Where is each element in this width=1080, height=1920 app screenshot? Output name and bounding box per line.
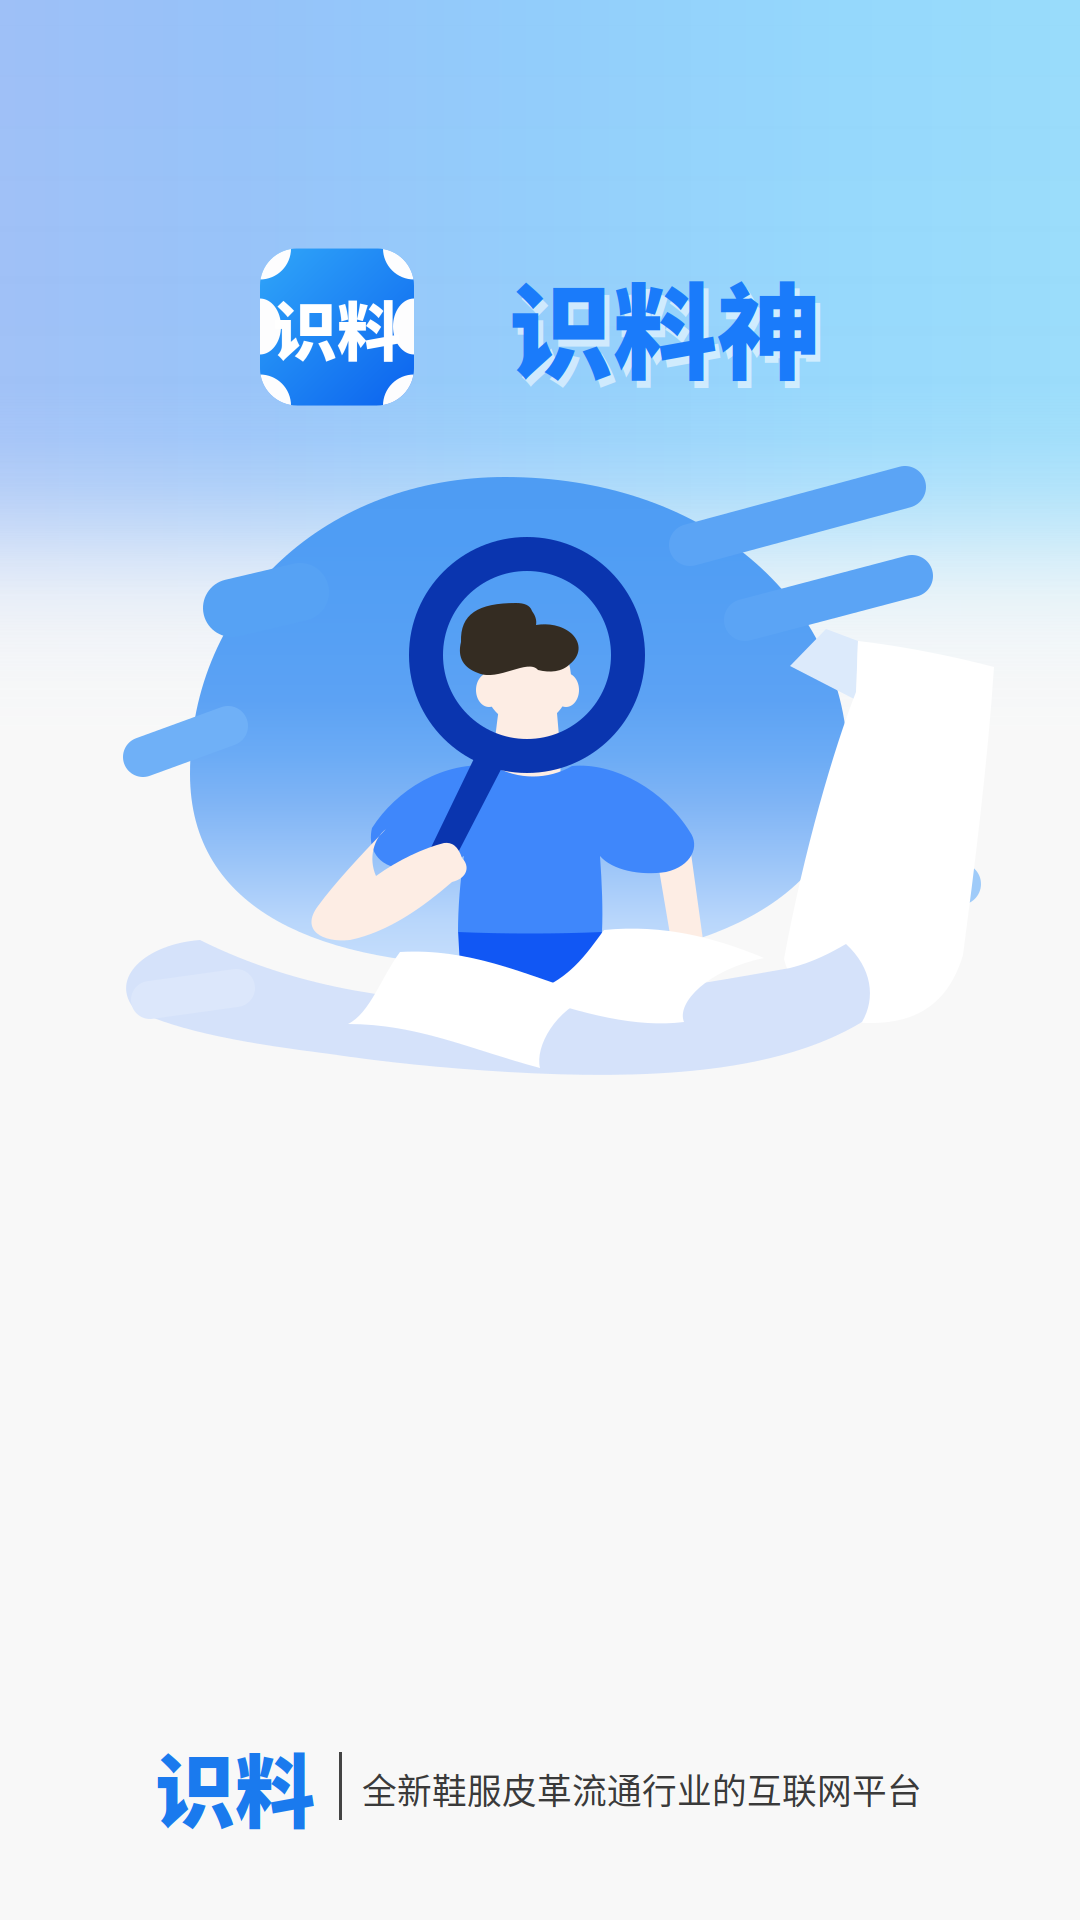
staticText: 识料 <box>155 1728 315 1844</box>
staticText: 全新鞋服皮革流通行业的互联网平台 <box>362 1764 922 1814</box>
staticText: 识料 <box>273 281 401 373</box>
staticText: 识料神 <box>509 251 821 401</box>
staticText: 识料神 <box>514 258 826 408</box>
